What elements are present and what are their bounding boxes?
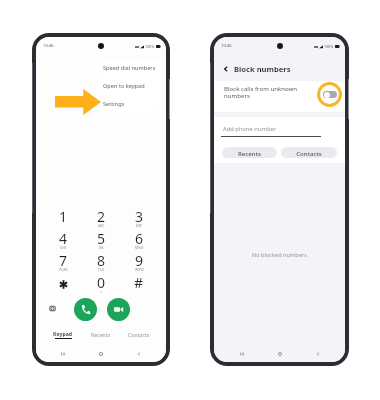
staticText: 9: [135, 251, 144, 270]
button[interactable]: 5: [82, 229, 120, 251]
staticText: Block numbers: [234, 64, 291, 74]
button[interactable]: 3: [120, 207, 158, 229]
button[interactable]: Call: [74, 298, 97, 321]
staticText: Keypad: [53, 330, 73, 337]
staticText: Contacts: [296, 149, 322, 157]
button[interactable]: 0: [82, 273, 120, 295]
staticText: DEF: [136, 223, 143, 228]
button[interactable]: Contacts: [281, 147, 337, 158]
staticText: 100%: [145, 44, 155, 49]
button[interactable]: Settings: [97, 95, 162, 112]
button[interactable]: Open to keypad: [97, 77, 162, 95]
button[interactable]: Recent apps: [44, 345, 82, 362]
staticText: 8: [97, 251, 106, 270]
staticText: +: [100, 289, 102, 294]
button[interactable]: Recents: [222, 147, 277, 158]
button[interactable]: Recent apps: [222, 345, 261, 362]
button[interactable]: [44, 273, 82, 295]
button[interactable]: 2: [82, 207, 120, 229]
staticText: JKL: [99, 245, 104, 250]
button[interactable]: Home: [82, 345, 120, 362]
staticText: Open to keypad: [103, 82, 145, 90]
button[interactable]: Add phone number: [221, 125, 321, 137]
button[interactable]: 4: [44, 229, 82, 251]
button[interactable]: Contacts: [120, 327, 158, 341]
button[interactable]: Speed dial numbers: [97, 59, 162, 77]
button[interactable]: Home: [261, 345, 299, 362]
staticText: 4: [59, 229, 68, 248]
staticText: 2: [97, 207, 106, 226]
staticText: Contacts: [128, 331, 150, 338]
staticText: 3: [135, 207, 144, 226]
button[interactable]: Block calls from unknown numbers: [214, 81, 345, 112]
staticText: Recents: [91, 331, 111, 338]
staticText: No blocked numbers: [252, 251, 307, 259]
button[interactable]: #: [120, 273, 158, 295]
staticText: GHI: [60, 245, 67, 250]
staticText: Speed dial numbers: [103, 64, 156, 72]
staticText: MNO: [135, 245, 144, 250]
button[interactable]: Recents: [82, 327, 120, 341]
button[interactable]: 1: [44, 207, 82, 229]
staticText: Block calls from unknown numbers: [224, 84, 298, 100]
button[interactable]: 7: [44, 251, 82, 273]
staticText: 6: [135, 229, 144, 248]
button[interactable]: Back: [120, 345, 158, 362]
staticText: 10:46: [43, 43, 54, 49]
staticText: PQRS: [59, 267, 68, 272]
button[interactable]: Keypad: [44, 327, 82, 341]
staticText: #: [134, 273, 144, 292]
staticText: Add phone number: [223, 125, 277, 133]
staticText: ABC: [98, 223, 105, 228]
staticText: Settings: [103, 100, 125, 108]
staticText: 10:46: [221, 43, 232, 49]
staticText: 7: [59, 251, 68, 270]
staticText: WXYZ: [135, 267, 144, 272]
button[interactable]: 8: [82, 251, 120, 273]
staticText: 1: [59, 207, 68, 226]
staticText: Recents: [238, 149, 261, 157]
staticText: 100%: [324, 44, 334, 49]
button[interactable]: Keypad options: [47, 303, 57, 313]
staticText: 0: [97, 273, 106, 292]
staticText: TUV: [98, 267, 105, 272]
button[interactable]: 6: [120, 229, 158, 251]
button[interactable]: Back: [220, 63, 232, 75]
staticText: 5: [97, 229, 106, 248]
button[interactable]: 9: [120, 251, 158, 273]
button[interactable]: Back: [299, 345, 337, 362]
button[interactable]: Video call: [107, 298, 130, 321]
